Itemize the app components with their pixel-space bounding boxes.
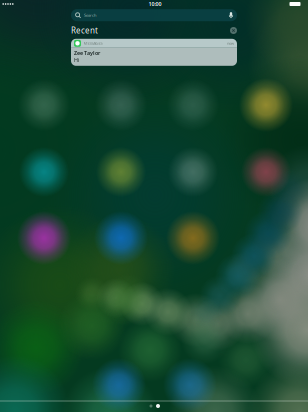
staticText: now: [227, 41, 234, 46]
staticText: MESSAGES: [83, 41, 102, 46]
staticText: Hi: [74, 56, 79, 63]
staticText: Search: [84, 12, 96, 18]
staticText: Zee Taylor: [74, 49, 100, 56]
button[interactable]: MESSAGES: [71, 39, 237, 66]
button[interactable]: Search: [71, 9, 237, 21]
button[interactable]: Clear recent searches: [230, 27, 237, 34]
staticText: Recent: [71, 25, 98, 36]
staticText: 10:00: [148, 0, 161, 8]
